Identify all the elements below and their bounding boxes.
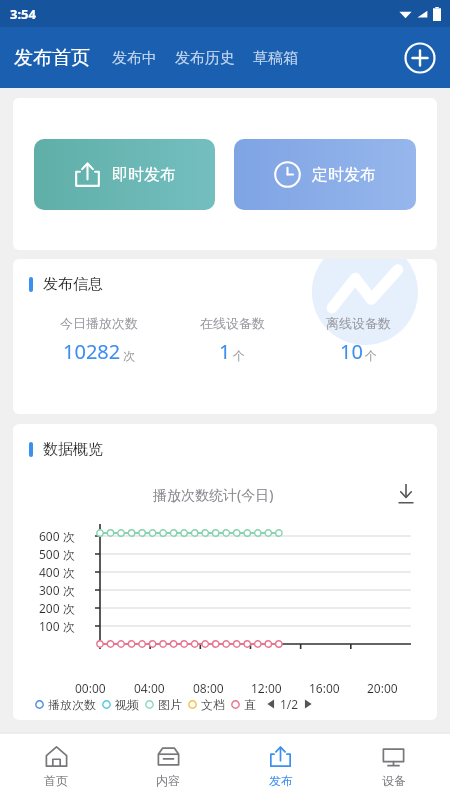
staticText: 首页 [44, 773, 68, 788]
button[interactable]: Next [301, 697, 315, 711]
staticText: 播放次数统计(今日) [153, 485, 274, 504]
staticText: 12:00 [251, 680, 282, 696]
staticText: 发布 [269, 773, 293, 788]
staticText: 10282 [63, 338, 121, 365]
button[interactable]: 发布首页 [12, 40, 92, 76]
staticText: 10 [340, 338, 363, 365]
staticText: 今日播放次数 [60, 315, 138, 331]
staticText: 发布中 [112, 49, 157, 68]
staticText: 直 [244, 697, 256, 712]
staticText: 设备 [382, 773, 406, 788]
staticText: 播放次数 [48, 697, 96, 712]
button[interactable]: 内容 [112, 733, 224, 800]
button[interactable]: 发布中 [106, 41, 163, 76]
staticText: 即时发布 [112, 165, 176, 185]
button[interactable]: 图片 [145, 697, 188, 712]
staticText: 发布信息 [43, 275, 103, 294]
staticText: 16:00 [309, 680, 340, 696]
staticText: 图片 [158, 697, 182, 712]
button[interactable]: 草稿箱 [247, 41, 304, 76]
staticText: 发布首页 [14, 46, 90, 70]
button[interactable]: 发布历史 [169, 41, 241, 76]
staticText: 离线设备数 [326, 315, 391, 331]
staticText: 00:00 [75, 680, 106, 696]
staticText: 100 次 [39, 618, 75, 634]
button[interactable]: 发布 [224, 733, 337, 800]
staticText: 1/2 [280, 696, 299, 712]
staticText: 04:00 [134, 680, 165, 696]
staticText: 400 次 [39, 564, 75, 580]
staticText: 草稿箱 [253, 49, 298, 68]
staticText: 在线设备数 [200, 315, 265, 331]
staticText: 300 次 [39, 582, 75, 598]
staticText: 200 次 [39, 600, 75, 616]
button[interactable]: 即时发布 [34, 139, 215, 210]
button[interactable]: 设备 [337, 733, 450, 800]
staticText: 发布历史 [175, 49, 235, 68]
staticText: 次 [123, 348, 135, 363]
button[interactable]: 播放次数 [35, 697, 102, 712]
staticText: 个 [233, 348, 245, 363]
staticText: 定时发布 [312, 165, 376, 185]
staticText: 视频 [115, 697, 139, 712]
staticText: 个 [365, 348, 377, 363]
staticText: 600 次 [39, 528, 75, 544]
staticText: 08:00 [193, 680, 224, 696]
button[interactable]: Download [395, 483, 417, 505]
button[interactable]: 首页 [0, 733, 112, 800]
staticText: 3:54 [10, 5, 36, 23]
button[interactable]: 定时发布 [234, 139, 416, 210]
staticText: 1 [219, 338, 231, 365]
staticText: 内容 [156, 773, 180, 788]
staticText: 20:00 [367, 680, 398, 696]
staticText: 文档 [201, 697, 225, 712]
staticText: 数据概览 [43, 440, 103, 459]
button[interactable]: Add [404, 42, 436, 74]
button[interactable]: Previous [264, 697, 278, 711]
button[interactable]: 视频 [102, 697, 145, 712]
button[interactable]: 直 [231, 697, 262, 712]
staticText: 500 次 [39, 546, 75, 562]
button[interactable]: 文档 [188, 697, 231, 712]
